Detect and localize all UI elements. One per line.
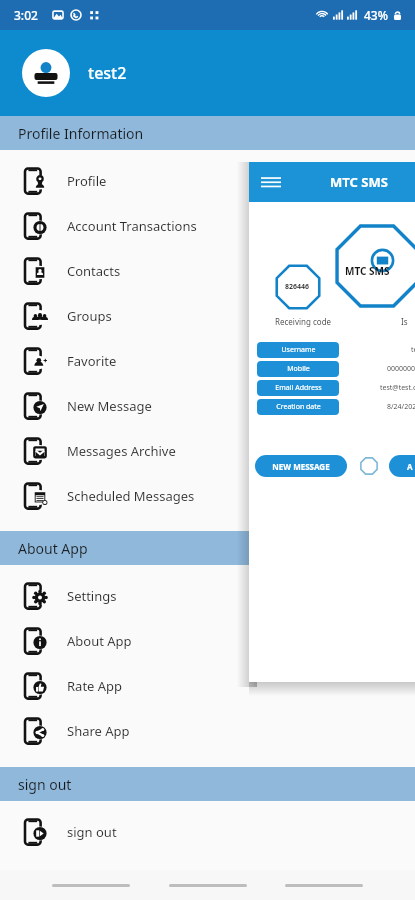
staticText: Profile Information: [18, 124, 144, 143]
staticText: Contacts: [67, 262, 121, 280]
button[interactable]: Groups: [0, 293, 415, 338]
button[interactable]: About App: [0, 618, 415, 663]
button[interactable]: Settings: [0, 573, 415, 618]
staticText: New Message: [67, 397, 152, 415]
staticText: 0000000000: [387, 364, 415, 374]
staticText: 3:02: [14, 7, 38, 23]
button[interactable]: Account Transactions: [0, 203, 415, 248]
button[interactable]: Messages Archive: [0, 428, 415, 473]
staticText: Profile: [67, 172, 107, 190]
staticText: Scheduled Messages: [67, 487, 195, 505]
button[interactable]: Share App: [0, 708, 415, 753]
staticText: 826446: [285, 282, 310, 292]
staticText: NEW MESSAGE: [272, 461, 330, 472]
button[interactable]: A: [389, 455, 415, 477]
staticText: Is: [401, 316, 408, 327]
button[interactable]: Contacts: [0, 248, 415, 293]
staticText: Settings: [67, 587, 117, 605]
staticText: Mobile: [287, 364, 310, 374]
staticText: sign out: [67, 823, 117, 841]
staticText: About App: [67, 632, 132, 650]
staticText: Rate App: [67, 677, 123, 695]
staticText: 8/24/2020 2: [387, 402, 415, 412]
staticText: About App: [18, 539, 88, 558]
staticText: Email Address: [275, 383, 322, 393]
button[interactable]: NEW MESSAGE: [255, 455, 347, 477]
staticText: test@test.com: [380, 383, 415, 393]
staticText: Messages Archive: [67, 442, 176, 460]
button[interactable]: Navigation: [169, 884, 247, 887]
other: Menu: [261, 172, 281, 192]
staticText: MTC SMS: [330, 173, 388, 191]
staticText: Share App: [67, 722, 130, 740]
button[interactable]: Scheduled Messages: [0, 473, 415, 518]
staticText: A: [407, 461, 413, 472]
staticText: 43%: [364, 7, 388, 23]
staticText: Username: [281, 345, 316, 355]
staticText: sign out: [18, 775, 72, 794]
staticText: Account Transactions: [67, 217, 197, 235]
staticText: test2: [88, 62, 127, 84]
button[interactable]: Favorite: [0, 338, 415, 383]
button[interactable]: New Message: [0, 383, 415, 428]
button[interactable]: Menu: [249, 162, 415, 682]
staticText: Favorite: [67, 352, 117, 370]
button[interactable]: Navigation: [52, 884, 130, 887]
button[interactable]: Rate App: [0, 663, 415, 708]
staticText: Creation date: [276, 402, 321, 412]
staticText: Groups: [67, 307, 112, 325]
staticText: Receiving code: [275, 316, 332, 327]
button[interactable]: test2: [0, 30, 415, 116]
staticText: test2: [411, 345, 415, 355]
button[interactable]: Navigation: [285, 884, 363, 887]
button[interactable]: sign out: [0, 809, 415, 854]
staticText: MTC SMS: [345, 264, 390, 278]
button[interactable]: Profile: [0, 158, 415, 203]
